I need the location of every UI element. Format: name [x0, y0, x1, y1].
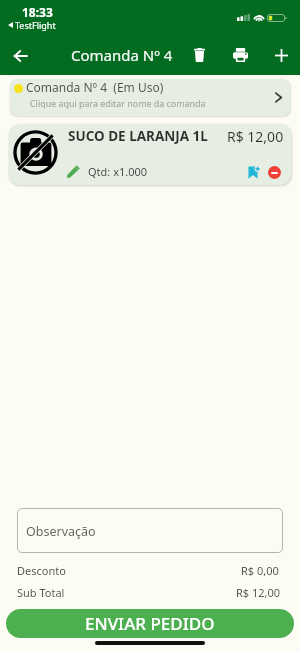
button[interactable]: ENVIAR PEDIDO — [6, 609, 294, 638]
button[interactable]: SUCO DE LARANJA 1L — [9, 124, 291, 185]
button[interactable]: Comanda Nº 4 (Em Uso) — [10, 79, 290, 116]
staticText: R$ 12,00 — [227, 127, 284, 146]
button[interactable]: Delete — [183, 39, 215, 71]
button[interactable]: Observação — [17, 508, 283, 553]
staticText: Qtd: x1.000 — [88, 164, 148, 179]
button[interactable]: Back — [4, 39, 37, 72]
staticText: Comanda Nº 4 (Em Uso) — [26, 79, 164, 95]
staticText: 18:33 — [22, 4, 53, 20]
staticText: R$ 0,00 — [241, 563, 279, 578]
staticText: Observação — [26, 523, 96, 540]
staticText: Comanda Nº 4 — [71, 45, 173, 65]
staticText: ENVIAR PEDIDO — [85, 612, 215, 635]
button[interactable]: Add item — [265, 39, 297, 71]
staticText: Sub Total — [17, 585, 65, 600]
staticText: R$ 12,00 — [236, 585, 281, 600]
button[interactable]: Add note — [243, 161, 265, 183]
staticText: Desconto — [17, 563, 66, 578]
button[interactable]: Remove item — [263, 161, 285, 183]
staticText: TestFlight — [15, 19, 56, 31]
button[interactable]: Print — [224, 39, 256, 71]
staticText: SUCO DE LARANJA 1L — [68, 127, 208, 145]
staticText: Clique aqui para editar nome da comanda — [30, 97, 206, 109]
